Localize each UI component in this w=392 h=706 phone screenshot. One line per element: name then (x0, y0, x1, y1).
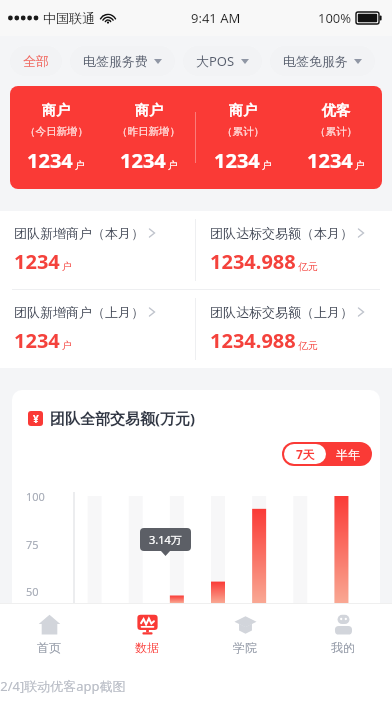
staticText: 商户 (135, 102, 163, 120)
staticText: [2/4]联动优客app截图 (0, 677, 126, 695)
staticText: 户 (262, 159, 272, 172)
button[interactable]: 首页 (0, 603, 98, 665)
staticText: 户 (168, 159, 178, 172)
button[interactable]: 电签服务费 (70, 46, 175, 76)
staticText: 团队全部交易额(万元) (50, 408, 196, 428)
staticText: 商户 (42, 102, 70, 120)
staticText: （昨日新增） (117, 125, 180, 138)
button[interactable]: 半年 (326, 444, 370, 464)
staticText: （累计） (315, 125, 357, 138)
staticText: 1234 (14, 248, 60, 275)
staticText: ¥ (33, 412, 39, 426)
staticText: 优客 (322, 102, 350, 120)
staticText: 半年 (336, 447, 360, 462)
staticText: 户 (62, 260, 72, 273)
staticText: 1234 (14, 327, 60, 354)
button[interactable]: 团队达标交易额（上月） (196, 290, 392, 368)
staticText: 数据 (135, 640, 159, 655)
staticText: 团队新增商户（上月） (14, 304, 144, 320)
button[interactable]: 全部 (10, 46, 62, 76)
button[interactable]: 团队新增商户（本月） (0, 211, 195, 289)
staticText: 首页 (37, 640, 61, 655)
button[interactable]: 团队新增商户（上月） (0, 290, 195, 368)
button[interactable]: 电签免服务 (270, 46, 375, 76)
staticText: 户 (355, 159, 365, 172)
staticText: 9:41 AM (191, 9, 241, 27)
staticText: 全部 (23, 53, 49, 69)
staticText: 户 (62, 339, 72, 352)
button[interactable]: 7天 (282, 442, 372, 466)
staticText: 学院 (233, 640, 257, 655)
staticText: 75 (26, 537, 39, 552)
staticText: 1234.988 (210, 327, 296, 354)
staticText: 3.14万 (149, 532, 182, 547)
staticText: 1234.988 (210, 248, 296, 275)
staticText: 亿元 (298, 339, 318, 352)
button[interactable]: 7天 (284, 444, 326, 464)
staticText: 7天 (296, 446, 315, 462)
staticText: 100 (26, 489, 45, 504)
button[interactable]: 大POS (183, 46, 262, 76)
staticText: （今日新增） (25, 125, 88, 138)
staticText: 户 (75, 159, 85, 172)
staticText: 团队新增商户（本月） (14, 225, 144, 241)
staticText: 1234 (214, 147, 260, 174)
button[interactable]: 商户 (10, 86, 382, 189)
button[interactable]: 团队达标交易额（本月） (196, 211, 392, 289)
staticText: 团队达标交易额（本月） (210, 225, 353, 241)
staticText: 电签免服务 (283, 53, 348, 69)
button[interactable]: 数据 (98, 603, 196, 665)
staticText: 1234 (307, 147, 353, 174)
staticText: 100% (318, 9, 352, 27)
staticText: 1234 (120, 147, 166, 174)
staticText: 50 (26, 584, 39, 599)
staticText: 1234 (27, 147, 73, 174)
button[interactable]: 我的 (294, 603, 392, 665)
button[interactable]: 学院 (196, 603, 294, 665)
staticText: 大POS (196, 52, 235, 70)
staticText: （累计） (222, 125, 264, 138)
staticText: 亿元 (298, 260, 318, 273)
staticText: 商户 (229, 102, 257, 120)
staticText: 电签服务费 (83, 53, 148, 69)
staticText: 我的 (331, 640, 355, 655)
staticText: 团队达标交易额（上月） (210, 304, 353, 320)
staticText: 中国联通 (43, 10, 95, 26)
